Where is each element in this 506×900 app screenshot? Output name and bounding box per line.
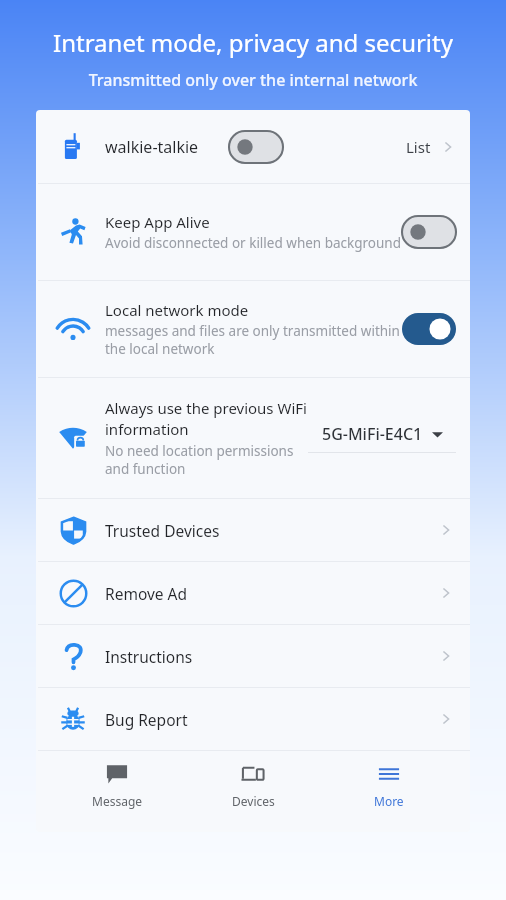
button[interactable]: More [334,751,444,809]
button[interactable]: Bug Report [36,688,470,750]
button[interactable]: 5G-MiFi-E4C1 [322,423,443,445]
button[interactable]: Devices [198,751,308,809]
button[interactable]: Trusted Devices [36,499,470,561]
staticText: Devices [232,793,275,809]
staticText: walkie-talkie [105,136,199,158]
staticText: messages and files are only transmitted … [105,322,402,358]
staticText: 5G-MiFi-E4C1 [322,423,423,445]
staticText: Trusted Devices [105,520,438,541]
staticText: Bug Report [105,709,438,730]
staticText: More [374,793,404,809]
button[interactable]: Always use the previous WiFi information [36,378,470,498]
staticText: Keep App Alive [105,212,210,232]
staticText: Local network mode [105,300,249,320]
button[interactable]: Keep App Alive [36,184,470,280]
staticText: Avoid disconnected or killed when backgr… [105,234,402,252]
button[interactable]: walkie-talkie [36,110,470,183]
staticText: Always use the previous WiFi information [105,398,308,440]
staticText: List [406,137,431,157]
staticText: No need location permissions and functio… [105,442,308,478]
button[interactable]: Remove Ad [36,562,470,624]
staticText: Intranet mode, privacy and security [10,26,496,59]
staticText: Transmitted only over the internal netwo… [10,69,496,91]
staticText: Remove Ad [105,583,438,604]
button[interactable]: Instructions [36,625,470,687]
staticText: Message [92,793,143,809]
button[interactable]: Message [62,751,172,809]
staticText: Instructions [105,646,438,667]
button[interactable]: Local network mode [36,281,470,377]
